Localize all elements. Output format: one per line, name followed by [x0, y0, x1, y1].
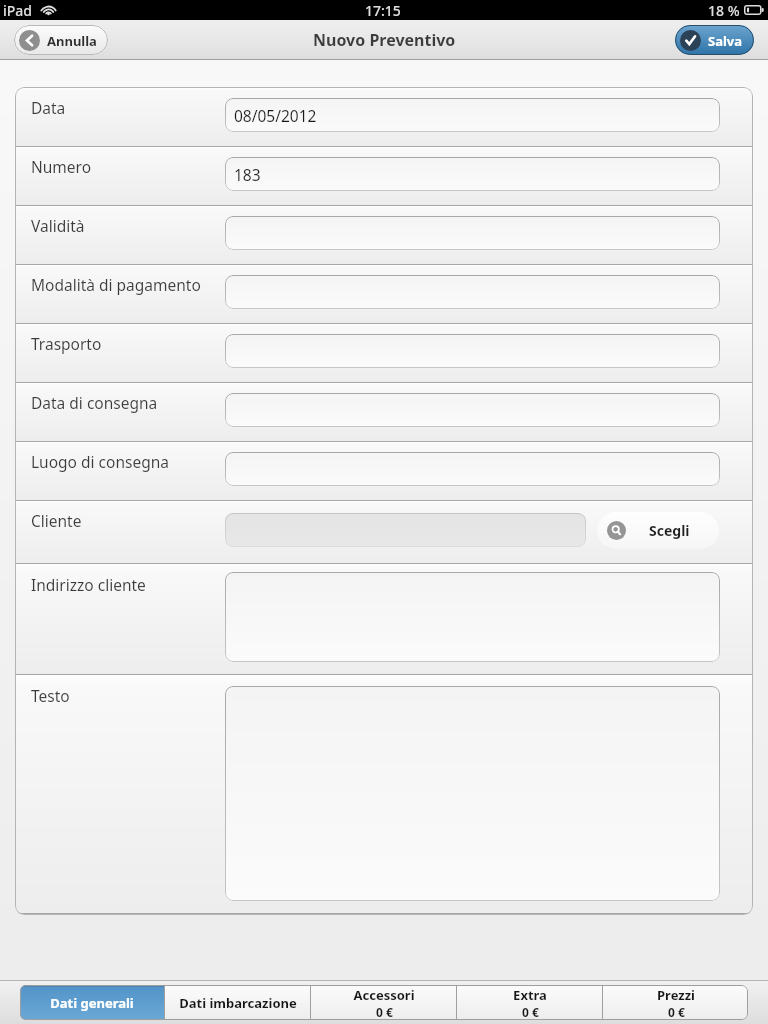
- button[interactable]: 08/05/2012: [225, 98, 720, 132]
- staticText: Data di consegna: [31, 392, 158, 413]
- button[interactable]: Accessori: [311, 985, 456, 1020]
- staticText: 0 €: [522, 1004, 539, 1020]
- button[interactable]: Cliente: [15, 501, 753, 563]
- staticText: Numero: [31, 156, 92, 177]
- staticText: Scegli: [649, 521, 690, 540]
- staticText: Accessori: [353, 986, 415, 1004]
- staticText: Modalità di pagamento: [31, 274, 201, 295]
- button[interactable]: Numero: [15, 147, 753, 205]
- button[interactable]: [225, 572, 720, 662]
- button[interactable]: Dati imbarcazione: [165, 985, 310, 1020]
- staticText: Dati imbarcazione: [179, 994, 297, 1012]
- button[interactable]: Validità: [15, 206, 753, 264]
- button[interactable]: [225, 452, 720, 486]
- staticText: Annulla: [47, 32, 97, 50]
- button[interactable]: Indirizzo cliente: [15, 564, 753, 674]
- button[interactable]: [225, 216, 720, 250]
- staticText: Testo: [31, 685, 70, 706]
- staticText: 08/05/2012: [234, 105, 317, 126]
- staticText: iPad: [3, 1, 33, 20]
- button[interactable]: [225, 334, 720, 368]
- button[interactable]: 183: [225, 157, 720, 191]
- staticText: Prezzi: [657, 986, 695, 1004]
- button[interactable]: Data di consegna: [15, 383, 753, 441]
- staticText: Salva: [708, 32, 743, 50]
- button[interactable]: [225, 686, 720, 901]
- button[interactable]: Extra: [457, 985, 602, 1020]
- button[interactable]: [225, 393, 720, 427]
- button[interactable]: [225, 513, 586, 547]
- staticText: Dati generali: [50, 994, 134, 1012]
- button[interactable]: Salva: [675, 25, 754, 55]
- staticText: 17:15: [365, 1, 401, 20]
- staticText: Extra: [513, 986, 547, 1004]
- staticText: Cliente: [31, 510, 82, 531]
- staticText: Nuovo Preventivo: [313, 29, 456, 51]
- staticText: Indirizzo cliente: [31, 574, 146, 595]
- staticText: 183: [234, 164, 261, 185]
- button[interactable]: Testo: [15, 675, 753, 913]
- staticText: Luogo di consegna: [31, 451, 169, 472]
- button[interactable]: Prezzi: [603, 985, 748, 1020]
- staticText: Trasporto: [31, 333, 102, 354]
- button[interactable]: Annulla: [14, 25, 108, 55]
- staticText: 18 %: [708, 1, 740, 20]
- button[interactable]: Data: [15, 88, 753, 146]
- button[interactable]: [225, 275, 720, 309]
- button[interactable]: Modalità di pagamento: [15, 265, 753, 323]
- button[interactable]: Scegli: [597, 512, 719, 549]
- button[interactable]: Dati generali: [20, 985, 164, 1020]
- staticText: Data: [31, 97, 66, 118]
- staticText: 0 €: [376, 1004, 393, 1020]
- staticText: Validità: [31, 215, 85, 236]
- staticText: 0 €: [668, 1004, 685, 1020]
- button[interactable]: Trasporto: [15, 324, 753, 382]
- button[interactable]: Luogo di consegna: [15, 442, 753, 500]
